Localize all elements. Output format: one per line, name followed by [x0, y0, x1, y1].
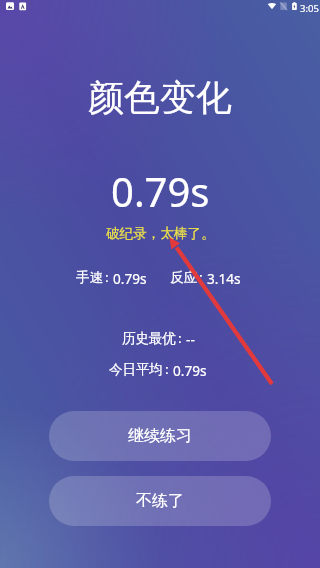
staticText: ： [173, 330, 187, 347]
staticText: 0.79s [111, 164, 210, 218]
staticText: 反应 [170, 269, 197, 286]
button[interactable]: 不练了 [49, 476, 271, 526]
staticText: ： [100, 269, 114, 286]
staticText: -- [186, 330, 195, 349]
staticText: 0.79s [173, 361, 207, 380]
staticText: 不练了 [136, 491, 184, 511]
staticText: ： [194, 269, 208, 286]
staticText: 3.14s [207, 269, 241, 288]
staticText: 今日平均 [109, 361, 163, 378]
staticText: ： [160, 361, 174, 378]
staticText: 手速 [76, 269, 103, 286]
staticText: 3:05 [300, 2, 319, 15]
staticText: 0.79s [113, 269, 147, 288]
staticText: 继续练习 [128, 426, 192, 446]
staticText: 历史最优 [122, 330, 176, 347]
staticText: 颜色变化 [88, 75, 232, 120]
staticText: 破纪录，太棒了。 [106, 225, 215, 242]
button[interactable]: 继续练习 [49, 411, 271, 461]
